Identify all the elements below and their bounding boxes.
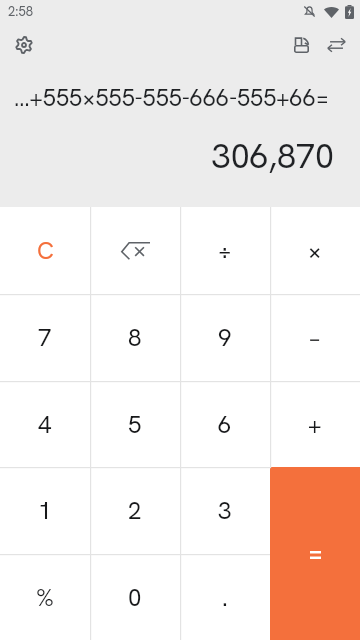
staticText: 3 (218, 495, 232, 526)
button[interactable]: Settings (6, 27, 42, 63)
staticText: 4 (38, 409, 52, 440)
button[interactable]: 6 (180, 381, 270, 467)
staticText: 0 (128, 582, 142, 613)
button[interactable]: Equals (270, 467, 360, 640)
button[interactable]: 3 (180, 467, 270, 554)
staticText: ÷ (218, 235, 232, 266)
button[interactable]: % (0, 554, 90, 640)
staticText: …+555×555-555-666-555+66= (13, 82, 329, 113)
button[interactable]: 1 (0, 467, 90, 554)
button[interactable]: × (270, 207, 360, 294)
staticText: . (222, 582, 228, 613)
button[interactable]: 4 (0, 381, 90, 467)
staticText: 1 (38, 495, 52, 526)
staticText: × (308, 235, 322, 266)
button[interactable]: 0 (90, 554, 180, 640)
staticText: 9 (218, 322, 232, 353)
staticText: 5 (128, 409, 142, 440)
button[interactable]: 8 (90, 294, 180, 381)
button[interactable]: C (0, 207, 90, 294)
button[interactable]: 7 (0, 294, 90, 381)
staticText: − (308, 322, 322, 353)
button[interactable]: 9 (180, 294, 270, 381)
staticText: 2 (128, 495, 142, 526)
button[interactable]: History (283, 27, 319, 63)
staticText: 6 (218, 409, 232, 440)
staticText: C (37, 235, 54, 266)
staticText: 306,870 (211, 134, 334, 178)
staticText: 2:58 (8, 3, 33, 20)
button[interactable]: 5 (90, 381, 180, 467)
staticText: 7 (38, 322, 52, 353)
staticText: 8 (128, 322, 142, 353)
button[interactable]: . (180, 554, 270, 640)
button[interactable]: ÷ (180, 207, 270, 294)
button[interactable]: Convert units (318, 27, 354, 63)
button[interactable]: − (270, 294, 360, 381)
button[interactable]: 2 (90, 467, 180, 554)
staticText: + (308, 409, 322, 440)
button[interactable]: + (270, 381, 360, 467)
button[interactable]: Backspace (90, 207, 180, 294)
staticText: % (36, 582, 54, 613)
